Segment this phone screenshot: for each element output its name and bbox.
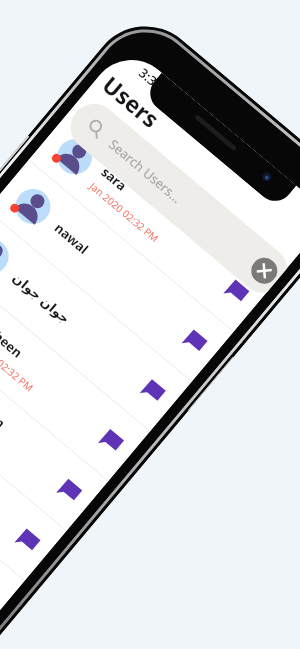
staticText: sara <box>98 163 131 195</box>
staticText: Search Users... <box>105 135 186 207</box>
staticText: جوان جوان <box>9 269 74 327</box>
button[interactable]: جوان جوان <box>0 210 192 431</box>
staticText: Jan 2020 02:32 PM <box>87 179 162 245</box>
button[interactable]: Search Users... <box>61 94 292 299</box>
button[interactable]: sara <box>29 110 275 332</box>
staticText: nawal <box>51 219 93 258</box>
button[interactable]: shaheen <box>0 260 150 481</box>
staticText: shaheen <box>0 312 27 362</box>
staticText: Jan 2020 02:32 PM <box>0 328 36 394</box>
staticText: Users <box>97 69 166 134</box>
button[interactable]: Add user <box>246 252 283 289</box>
staticText: ahmad hasan <box>0 362 10 432</box>
button[interactable]: nawal <box>0 160 233 381</box>
button[interactable]: ahmad hasan <box>0 309 108 531</box>
button[interactable]: kareem nabil <box>0 409 24 630</box>
button[interactable]: lina omar <box>0 359 66 581</box>
staticText: 3:35 <box>135 64 167 94</box>
